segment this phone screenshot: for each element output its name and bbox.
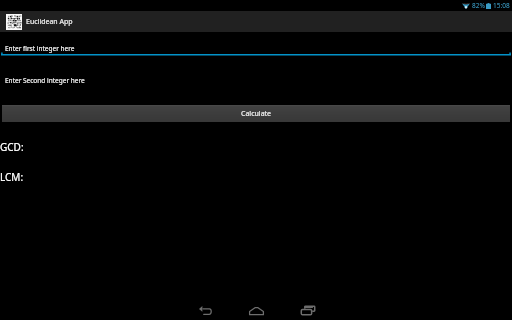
staticText: 15:08: [493, 1, 510, 10]
staticText: 82%: [472, 1, 485, 10]
staticText: Calculate: [241, 109, 272, 119]
button[interactable]: Euclidean App: [0, 11, 512, 32]
staticText: Euclidean App: [26, 17, 73, 27]
staticText: GCD:: [0, 140, 24, 154]
button[interactable]: Enter first integer here: [0, 40, 512, 57]
button[interactable]: Home: [232, 300, 280, 320]
staticText: Enter Second integer here: [5, 76, 85, 85]
button[interactable]: Calculate: [2, 105, 510, 122]
staticText: LCM:: [0, 170, 24, 184]
button[interactable]: Back: [181, 300, 229, 320]
button[interactable]: Recent apps: [284, 300, 332, 320]
button[interactable]: Enter Second integer here: [0, 72, 512, 89]
staticText: Enter first integer here: [5, 44, 75, 53]
